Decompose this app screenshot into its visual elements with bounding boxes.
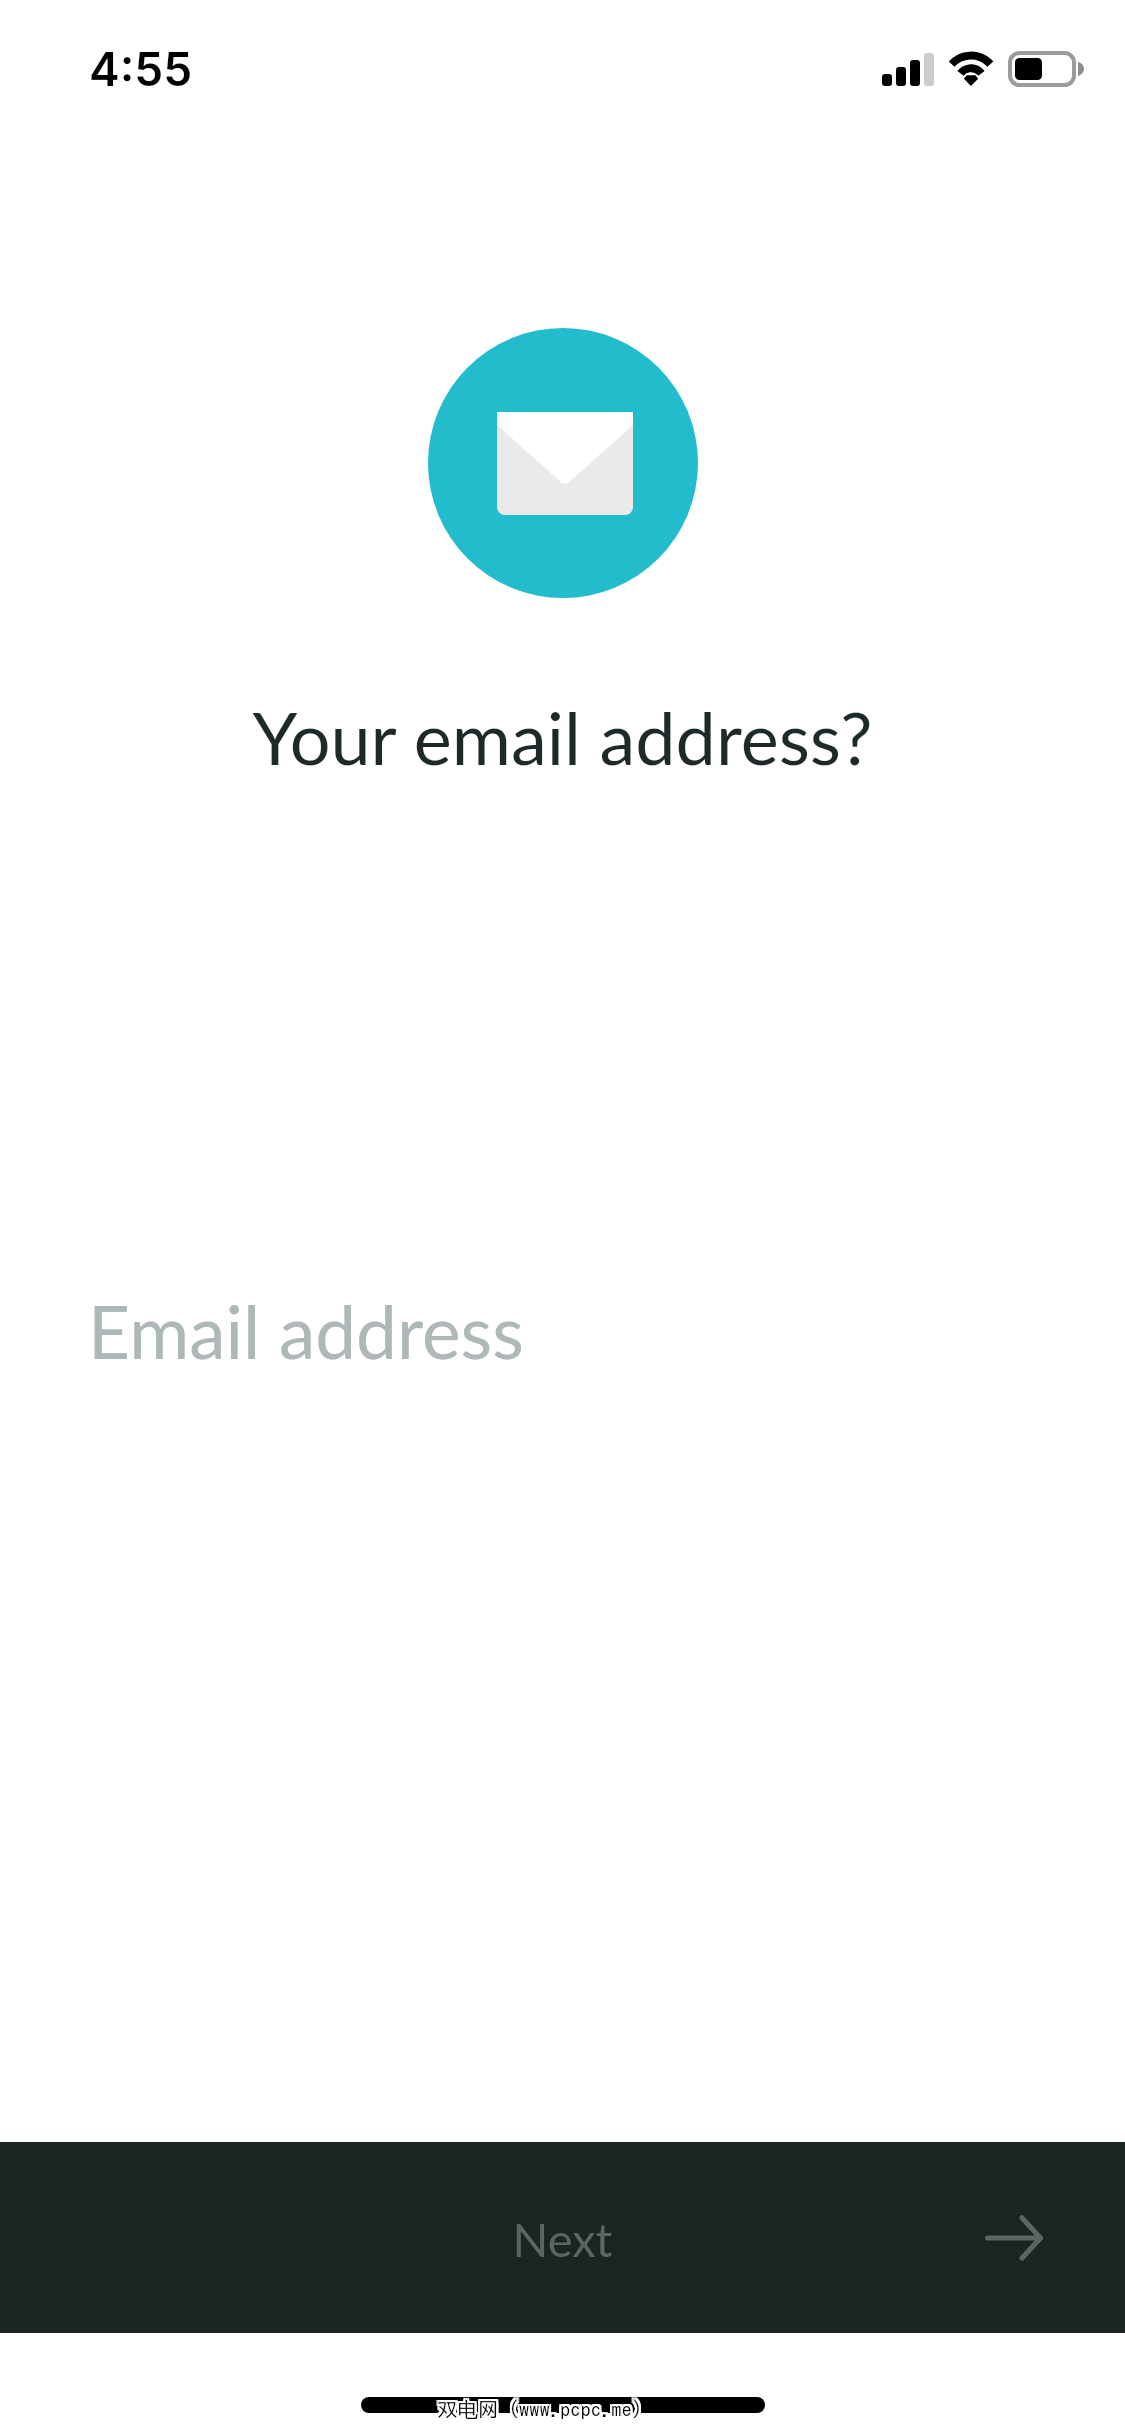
staticText: 双电网（www.pcpc.me）: [439, 2397, 655, 2423]
staticText: 双电网（www.pcpc.me）: [437, 2399, 653, 2425]
staticText: Email address: [88, 1287, 524, 1375]
staticText: 4:55: [89, 41, 193, 97]
staticText: 双电网（www.pcpc.me）: [435, 2399, 651, 2425]
staticText: Next: [0, 2211, 1125, 2267]
staticText: 双电网（www.pcpc.me）: [435, 2395, 651, 2421]
button[interactable]: Email address: [0, 1260, 1125, 1400]
staticText: 双电网（www.pcpc.me）: [437, 2397, 653, 2423]
staticText: 双电网（www.pcpc.me）: [439, 2395, 655, 2421]
staticText: Your email address?: [0, 694, 1125, 780]
other: Next: [985, 2216, 1043, 2260]
staticText: 双电网（www.pcpc.me）: [435, 2397, 651, 2423]
button[interactable]: Next: [0, 2142, 1125, 2333]
staticText: 双电网（www.pcpc.me）: [437, 2395, 653, 2421]
staticText: 双电网（www.pcpc.me）: [439, 2399, 655, 2425]
